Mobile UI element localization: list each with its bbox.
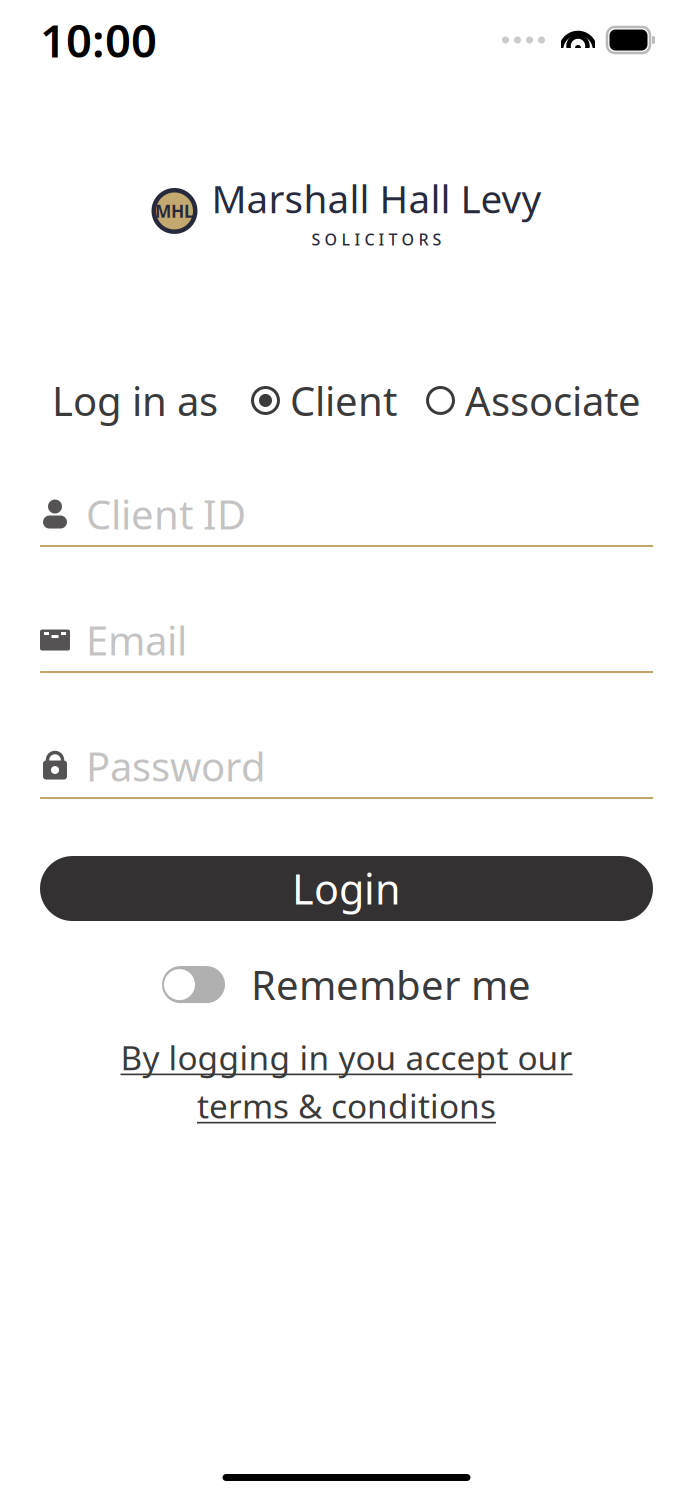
staticText: Log in as [52,374,218,427]
staticText: Password [86,739,266,793]
staticText: Email [86,613,187,667]
staticText: Associate [465,374,641,427]
staticText: terms & conditions [197,1083,496,1128]
button[interactable]: Client [252,368,397,433]
staticText: By logging in you accept our [120,1035,572,1079]
button[interactable]: Login [40,856,653,921]
staticText: 10:00 [40,10,157,70]
button[interactable]: Remember me [162,950,531,1019]
staticText: Client ID [86,487,246,541]
staticText: Client [290,374,397,427]
staticText: S O L I C I T O R S [311,229,441,250]
button[interactable]: Associate [427,368,641,433]
button[interactable]: By logging in you accept our [120,1035,572,1128]
staticText: Marshall Hall Levy [211,172,541,225]
staticText: Remember me [251,958,531,1011]
staticText: Login [292,861,401,916]
staticText: MHL [155,199,194,222]
